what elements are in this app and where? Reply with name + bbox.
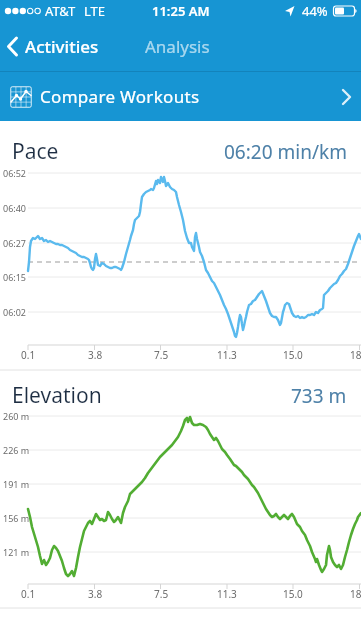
staticText: 0.1 — [21, 587, 36, 601]
staticText: 11:25 AM — [152, 2, 210, 20]
staticText: 156 m — [3, 512, 30, 524]
staticText: 44% — [302, 2, 328, 20]
staticText: 733 m — [291, 383, 347, 409]
staticText: 7.5 — [154, 348, 169, 362]
staticText: 121 m — [3, 546, 30, 558]
button[interactable]: Analysis — [145, 35, 210, 58]
staticText: Pace — [12, 137, 59, 166]
button[interactable]: Activities — [7, 35, 99, 58]
staticText: 06:20 min/km — [224, 139, 347, 165]
staticText: Activities — [25, 35, 99, 58]
staticText: 18.8 — [350, 587, 361, 601]
staticText: 06:27 — [3, 237, 27, 249]
staticText: AT&T — [45, 2, 76, 20]
staticText: 226 m — [3, 444, 30, 456]
staticText: Elevation — [12, 381, 102, 410]
staticText: 260 m — [3, 410, 30, 422]
staticText: 15.0 — [283, 348, 303, 362]
staticText: Compare Workouts — [40, 85, 200, 108]
staticText: 18.8 — [350, 348, 361, 362]
staticText: 3.8 — [88, 587, 103, 601]
staticText: 0.1 — [21, 348, 36, 362]
staticText: 15.0 — [283, 587, 303, 601]
staticText: 7.5 — [154, 587, 169, 601]
staticText: 3.8 — [88, 348, 103, 362]
staticText: 06:15 — [3, 271, 27, 283]
staticText: 11.3 — [217, 587, 237, 601]
staticText: 191 m — [3, 478, 30, 490]
staticText: 06:52 — [3, 167, 27, 179]
button[interactable]: Compare Workouts — [0, 72, 361, 121]
staticText: 06:40 — [3, 202, 27, 214]
staticText: 06:02 — [3, 306, 27, 318]
staticText: 11.3 — [217, 348, 237, 362]
staticText: LTE — [84, 2, 106, 20]
